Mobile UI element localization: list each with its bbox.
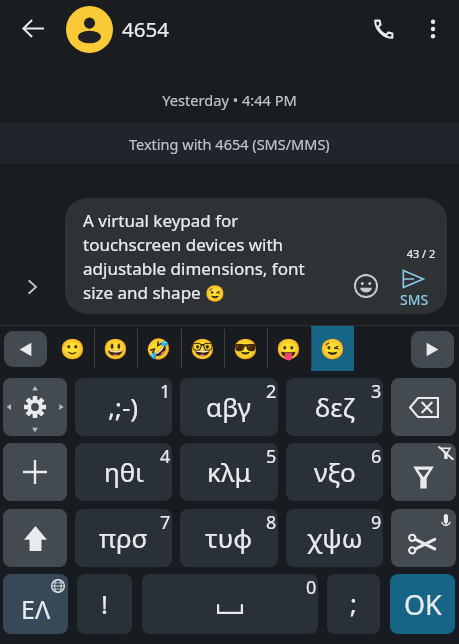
staticText: 😎 xyxy=(233,337,258,360)
staticText: δεζ xyxy=(315,389,355,424)
staticText: 🙂 xyxy=(60,337,85,360)
staticText: τυφ xyxy=(205,520,253,555)
button[interactable]: Back xyxy=(11,6,56,51)
button[interactable]: Emoji 4 xyxy=(181,326,224,371)
button[interactable]: νξο xyxy=(286,443,383,501)
staticText: EΛ xyxy=(21,592,51,626)
button[interactable]: Change language xyxy=(3,574,68,634)
staticText: 1 xyxy=(160,379,171,404)
staticText: 2 xyxy=(266,379,277,404)
button[interactable]: Semicolon xyxy=(327,574,380,634)
button[interactable]: Emoji 5 xyxy=(224,326,267,371)
button[interactable]: Backspace xyxy=(391,378,456,436)
button[interactable]: Emoji 2 xyxy=(94,326,137,371)
staticText: 🤣 xyxy=(146,337,171,360)
button[interactable]: More options xyxy=(411,7,455,51)
button[interactable]: Exclamation mark xyxy=(77,574,132,634)
button[interactable]: πρσ xyxy=(75,509,172,567)
button[interactable]: Cut xyxy=(391,509,456,567)
staticText: κλμ xyxy=(207,454,251,489)
button[interactable]: Filter xyxy=(391,443,456,501)
button[interactable]: αβγ xyxy=(180,378,278,436)
button[interactable]: Previous emoji page xyxy=(4,331,47,367)
button[interactable]: Insert emoji xyxy=(349,269,383,303)
staticText: 😛 xyxy=(276,337,301,360)
button[interactable]: Emoji 7 xyxy=(311,326,354,371)
staticText: νξο xyxy=(314,454,356,489)
staticText: 7 xyxy=(160,510,171,535)
button[interactable]: τυφ xyxy=(180,509,278,567)
button[interactable]: Emoji 3 xyxy=(137,326,180,371)
staticText: 8 xyxy=(266,510,277,535)
staticText: ; xyxy=(350,585,357,620)
button[interactable]: Add xyxy=(3,443,67,501)
button[interactable]: ,;-) xyxy=(75,378,172,436)
staticText: 6 xyxy=(371,444,382,469)
staticText: 9 xyxy=(371,510,382,535)
staticText: ηθι xyxy=(104,454,144,489)
staticText: 3 xyxy=(371,379,382,404)
button[interactable]: Emoji 6 xyxy=(267,326,310,371)
staticText: πρσ xyxy=(99,520,148,555)
staticText: χψω xyxy=(307,520,363,555)
staticText: 5 xyxy=(266,444,277,469)
button[interactable]: OK xyxy=(390,574,455,634)
staticText: 0 xyxy=(306,575,317,600)
staticText: 43 / 2 xyxy=(391,246,447,261)
staticText: ! xyxy=(101,586,108,621)
button[interactable]: Shift xyxy=(3,509,67,567)
button[interactable]: ηθι xyxy=(75,443,172,501)
staticText: A virtual keypad for touchscreen devices… xyxy=(83,209,323,304)
button[interactable]: χψω xyxy=(286,509,383,567)
button[interactable]: A virtual keypad for touchscreen devices… xyxy=(65,198,447,314)
staticText: ,;-) xyxy=(108,389,139,424)
staticText: 4654 xyxy=(122,15,169,43)
staticText: 😉 xyxy=(320,337,345,360)
button[interactable]: Emoji 1 xyxy=(51,326,94,371)
button[interactable]: δεζ xyxy=(286,378,383,436)
button[interactable]: Call xyxy=(362,7,406,51)
staticText: 4 xyxy=(160,444,171,469)
button[interactable]: Space xyxy=(142,574,318,634)
staticText: 😃 xyxy=(103,337,128,360)
button[interactable]: Settings xyxy=(3,378,67,436)
staticText: 🤓 xyxy=(190,337,215,360)
button[interactable]: Send SMS xyxy=(391,264,437,308)
button[interactable]: Next emoji page xyxy=(411,331,454,368)
staticText: Yesterday • 4:44 PM xyxy=(0,90,459,110)
staticText: OK xyxy=(404,586,442,623)
staticText: SMS xyxy=(400,290,429,309)
button[interactable]: κλμ xyxy=(180,443,278,501)
button[interactable]: Message details xyxy=(17,272,47,302)
staticText: αβγ xyxy=(206,389,252,424)
button[interactable]: Contact avatar xyxy=(66,6,113,53)
staticText: Texting with 4654 (SMS/MMS) xyxy=(129,134,330,154)
